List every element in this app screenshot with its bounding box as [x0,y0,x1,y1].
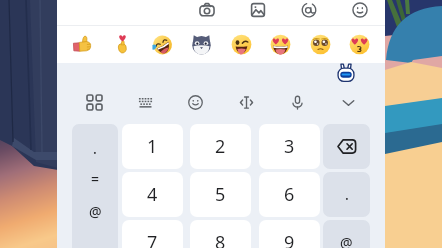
staticText: 5 [215,182,226,207]
staticText: 7 [147,230,158,248]
button[interactable]: Emoji [301,27,339,62]
button[interactable]: 5 [190,172,251,217]
staticText: @ [340,233,353,248]
button[interactable]: Emoji [340,27,378,62]
button[interactable]: Image [242,0,274,25]
button[interactable]: . [323,172,370,217]
staticText: 4 [147,182,158,207]
staticText: 9 [284,230,295,248]
staticText: . [345,185,349,204]
button[interactable]: Emoji [222,27,260,62]
button[interactable]: Mention [293,0,325,25]
button[interactable]: 8 [190,220,251,248]
button[interactable]: Emoji [143,27,181,62]
button[interactable]: Backspace [323,124,370,169]
button[interactable]: = [72,161,118,195]
staticText: @ [89,202,102,221]
staticText: 3 [284,134,295,159]
button[interactable]: Emoji [103,27,141,62]
staticText: 2 [215,134,226,159]
button[interactable]: Emoji [175,85,215,119]
button[interactable]: Hide keyboard [328,85,368,119]
button[interactable]: @ [72,194,118,228]
button[interactable]: Emoji [182,27,220,62]
button[interactable]: Emoji [261,27,299,62]
button[interactable]: Voice input [277,85,317,119]
button[interactable]: Emoji [64,27,102,62]
button[interactable]: . [72,131,118,165]
staticText: = [91,169,100,188]
button[interactable]: Text editing [226,85,266,119]
button[interactable]: 1 [122,124,183,169]
staticText: 1 [147,134,158,159]
button[interactable]: 9 [259,220,320,248]
button[interactable]: 2 [190,124,251,169]
button[interactable]: 3 [259,124,320,169]
button[interactable]: @ [323,220,370,248]
button[interactable]: Camera [191,0,223,25]
button[interactable]: 7 [122,220,183,248]
staticText: 8 [215,230,226,248]
button[interactable]: 4 [122,172,183,217]
button[interactable]: Sticker [335,63,357,83]
staticText: 6 [284,182,295,207]
button[interactable]: 6 [259,172,320,217]
button[interactable]: Apps [74,85,114,119]
button[interactable]: Emoji [344,0,376,25]
staticText: . [93,139,97,158]
button[interactable]: Keyboard layout [125,85,165,119]
